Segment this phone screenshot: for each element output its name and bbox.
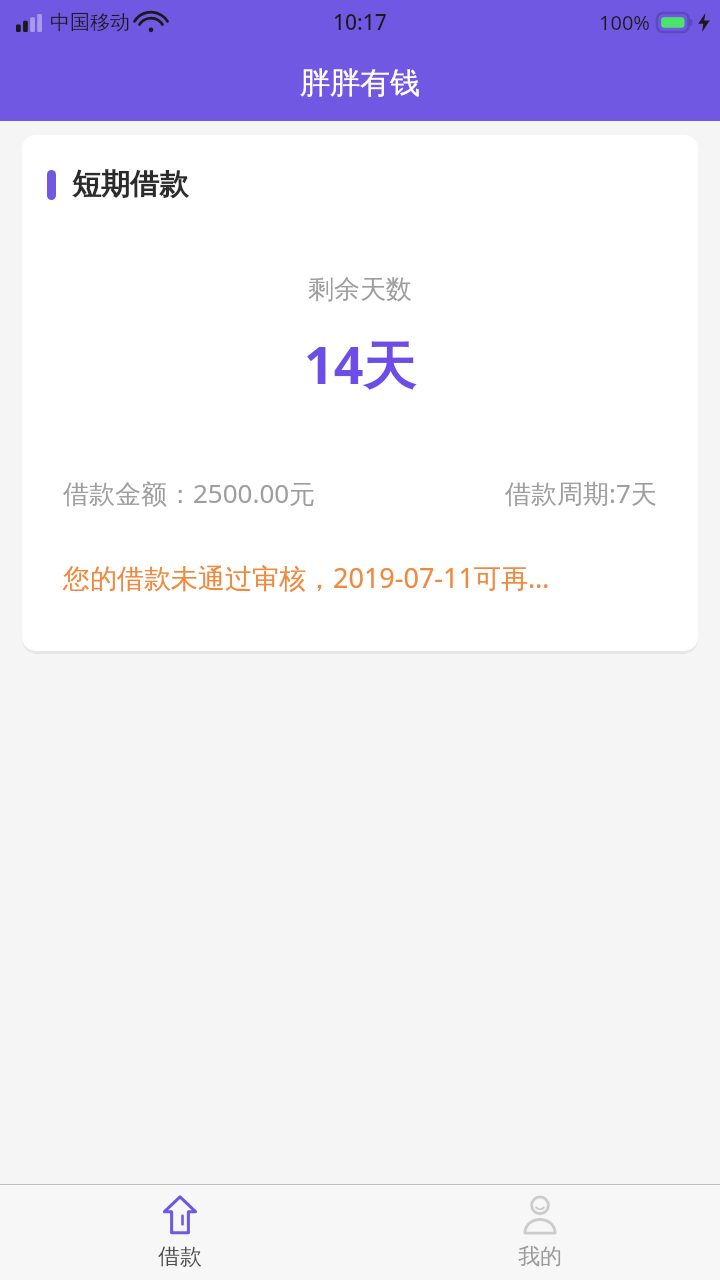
staticText: 借款周期:7天 bbox=[505, 475, 657, 511]
staticText: 14天 bbox=[304, 328, 416, 399]
staticText: 您的借款未通过审核，2019-07-11可再… bbox=[63, 559, 550, 596]
staticText: 10:17 bbox=[333, 8, 387, 37]
button[interactable]: 借款 bbox=[0, 1185, 360, 1280]
staticText: 借款金额：2500.00元 bbox=[63, 475, 316, 511]
staticText: 借款 bbox=[158, 1243, 202, 1271]
button[interactable]: 短期借款 bbox=[22, 135, 698, 651]
staticText: 100% bbox=[599, 9, 650, 36]
staticText: 短期借款 bbox=[72, 166, 188, 203]
staticText: 剩余天数 bbox=[308, 273, 412, 306]
button[interactable]: 我的 bbox=[360, 1185, 720, 1280]
staticText: 胖胖有钱 bbox=[300, 64, 420, 102]
staticText: 我的 bbox=[518, 1243, 562, 1271]
staticText: 中国移动 bbox=[50, 10, 130, 35]
